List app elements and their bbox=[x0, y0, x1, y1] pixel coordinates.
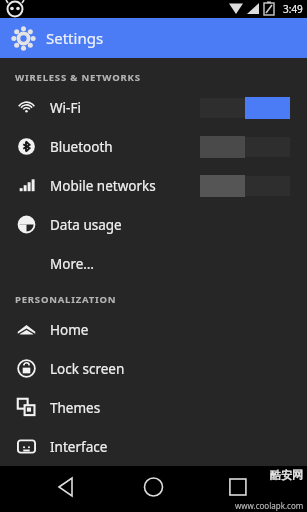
staticText: Mobile networks bbox=[50, 177, 156, 195]
button[interactable]: Bluetooth bbox=[0, 127, 307, 166]
staticText: Home bbox=[50, 321, 89, 339]
staticText: Interface bbox=[50, 438, 108, 456]
button[interactable]: Interface bbox=[0, 427, 307, 466]
button[interactable]: More… bbox=[0, 244, 307, 283]
staticText: Themes bbox=[50, 399, 101, 417]
button[interactable]: Mobile networks switch bbox=[200, 175, 290, 197]
button[interactable]: Wi-Fi switch bbox=[200, 97, 290, 119]
staticText: Data usage bbox=[50, 216, 122, 234]
other: Settings bbox=[13, 28, 34, 49]
staticText: Wi-Fi bbox=[50, 99, 81, 117]
button[interactable]: Settings bbox=[0, 18, 307, 58]
staticText: Settings bbox=[46, 28, 104, 48]
staticText: 3:49 bbox=[283, 2, 303, 16]
staticText: Lock screen bbox=[50, 360, 125, 378]
staticText: www.coolapk.com bbox=[235, 500, 304, 511]
button[interactable]: Wi-Fi bbox=[0, 88, 307, 127]
button[interactable]: Mobile networks bbox=[0, 166, 307, 205]
staticText: 酷安网 bbox=[270, 468, 303, 482]
staticText: WIRELESS & NETWORKS bbox=[15, 71, 141, 84]
button[interactable]: Themes bbox=[0, 388, 307, 427]
staticText: PERSONALIZATION bbox=[15, 293, 117, 306]
button[interactable]: Lock screen bbox=[0, 349, 307, 388]
staticText: Bluetooth bbox=[50, 138, 113, 156]
button[interactable]: Home bbox=[0, 310, 307, 349]
button[interactable]: Bluetooth switch bbox=[200, 136, 290, 158]
staticText: More… bbox=[50, 255, 95, 273]
button[interactable]: Data usage bbox=[0, 205, 307, 244]
